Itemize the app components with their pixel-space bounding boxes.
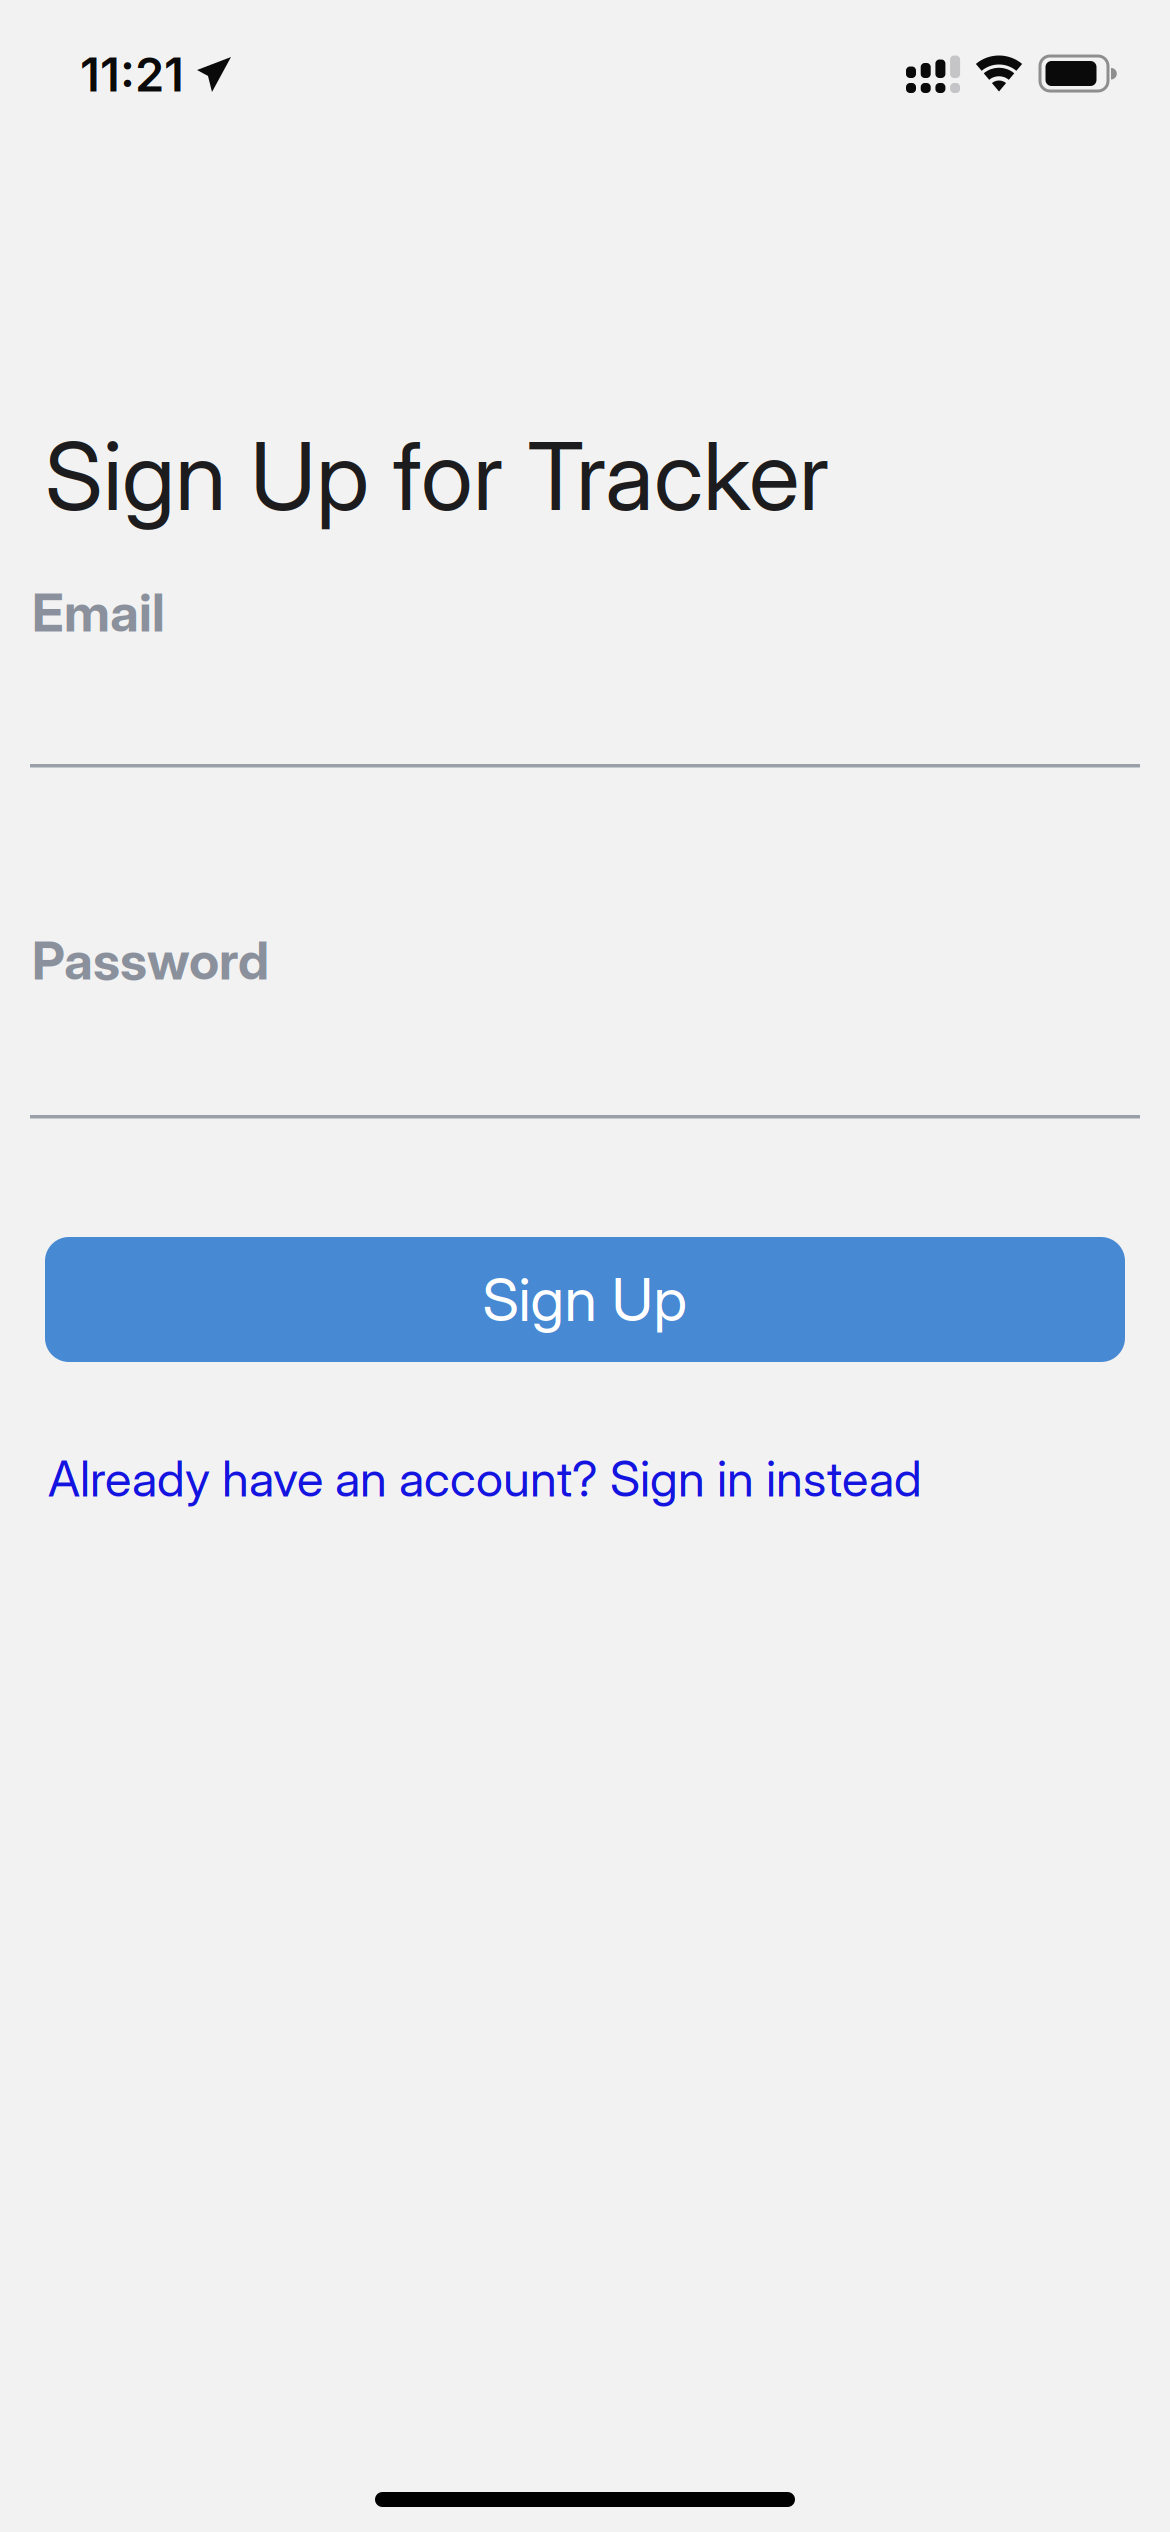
button[interactable]: Already have an account? Sign in instead	[48, 1449, 922, 1508]
staticText: Password	[32, 929, 269, 992]
staticText: Email	[32, 581, 165, 644]
button[interactable]: Password	[30, 929, 1140, 1104]
staticText: Already have an account? Sign in instead	[48, 1449, 922, 1508]
staticText: Sign Up for Tracker	[45, 419, 829, 533]
staticText: Sign Up	[482, 1264, 687, 1335]
staticText: 11:21	[80, 46, 184, 103]
button[interactable]: Sign Up	[45, 1237, 1125, 1362]
button[interactable]: Email	[30, 581, 1140, 756]
